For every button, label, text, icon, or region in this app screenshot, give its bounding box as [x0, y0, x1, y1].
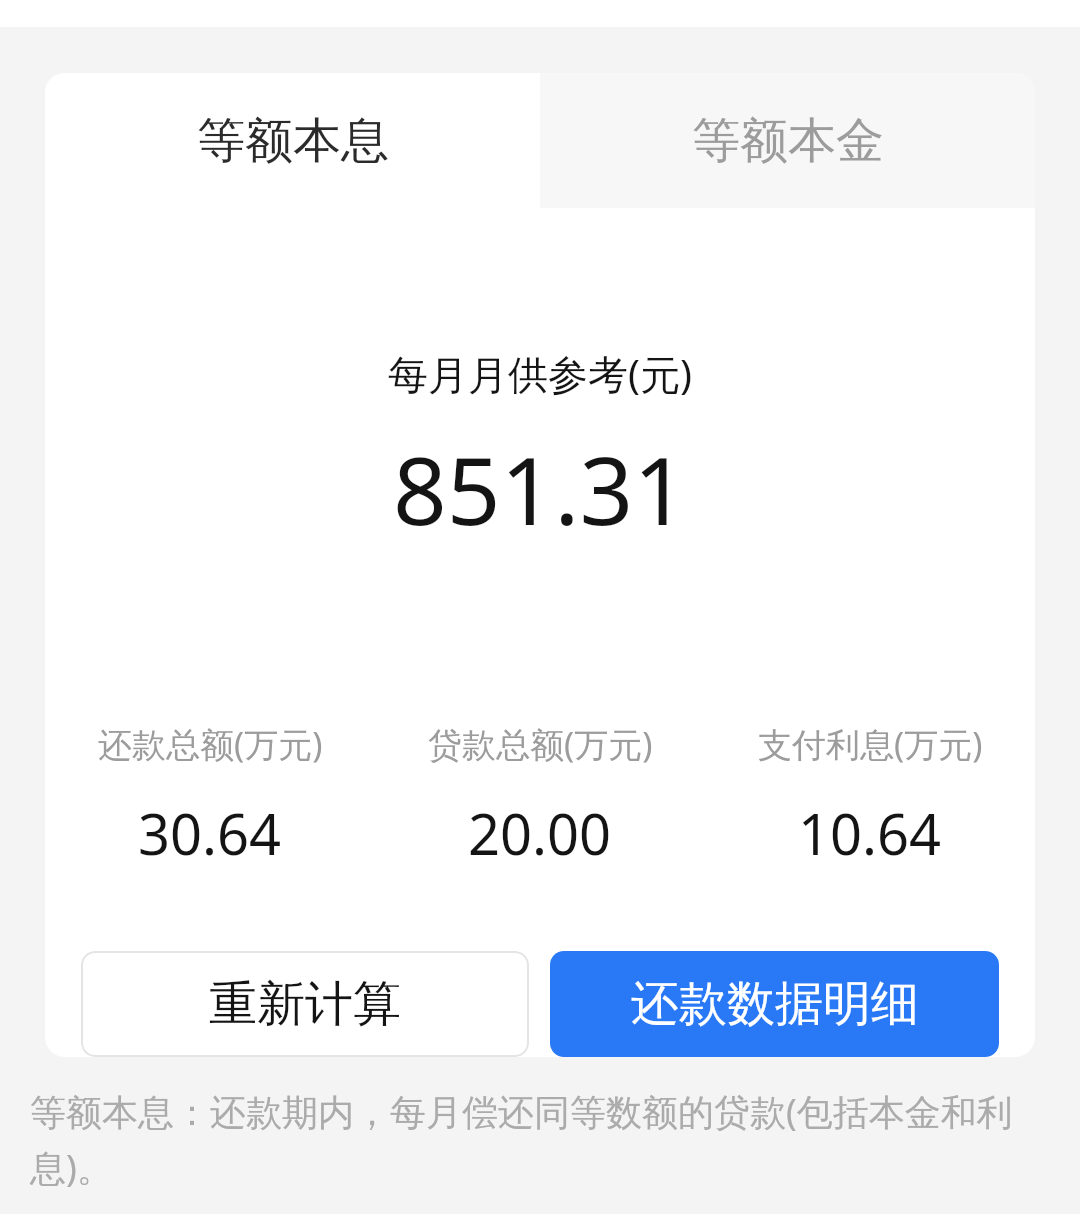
staticText: 30.64 — [138, 795, 282, 871]
staticText: 等额本息：还款期内，每月偿还同等数额的贷款(包括本金和利息)。 — [30, 1087, 1050, 1192]
button[interactable]: 还款数据明细 — [550, 951, 999, 1057]
staticText: 等额本息 — [197, 111, 389, 171]
staticText: 10.64 — [798, 795, 942, 871]
staticText: 贷款总额(万元) — [428, 721, 653, 767]
button[interactable]: 等额本金 — [540, 73, 1035, 208]
button[interactable]: 重新计算 — [81, 951, 529, 1057]
staticText: 851.31 — [45, 425, 1035, 553]
staticText: 等额本金 — [692, 111, 884, 171]
staticText: 支付利息(万元) — [758, 721, 983, 767]
button[interactable]: 等额本息 — [45, 73, 540, 208]
staticText: 每月月供参考(元) — [45, 346, 1035, 401]
staticText: 20.00 — [468, 795, 612, 871]
staticText: 还款数据明细 — [631, 974, 919, 1034]
staticText: 重新计算 — [209, 974, 401, 1034]
staticText: 还款总额(万元) — [98, 721, 323, 767]
